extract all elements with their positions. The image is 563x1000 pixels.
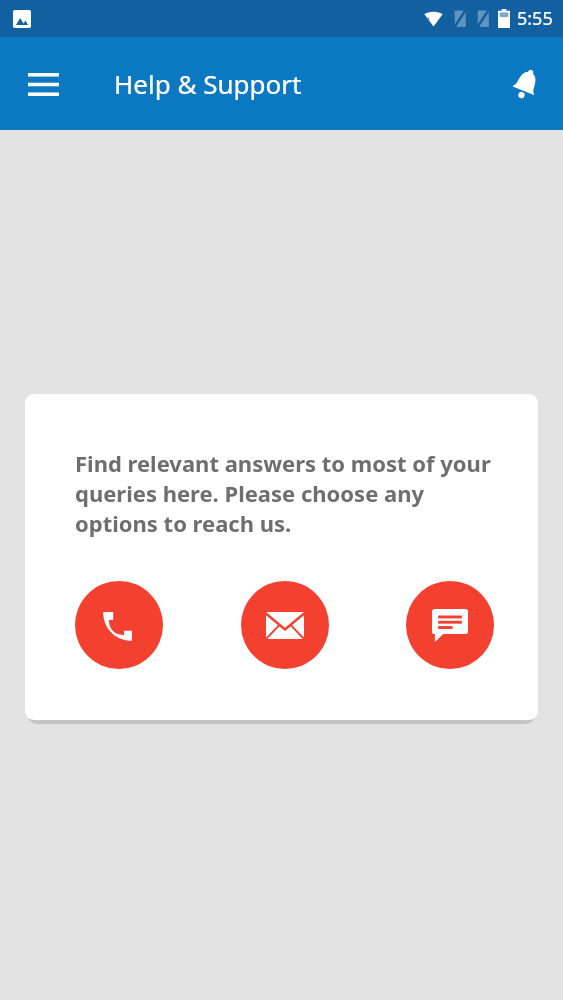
staticText: 5:55	[517, 6, 553, 31]
button[interactable]: Email us	[241, 581, 329, 669]
button[interactable]: Call us	[75, 581, 163, 669]
staticText: Help & Support	[114, 66, 302, 101]
button[interactable]: Chat with us	[406, 581, 494, 669]
staticText: Find relevant answers to most of your qu…	[75, 448, 498, 538]
button[interactable]: Notifications	[498, 56, 554, 112]
button[interactable]: Open navigation menu	[14, 55, 72, 113]
